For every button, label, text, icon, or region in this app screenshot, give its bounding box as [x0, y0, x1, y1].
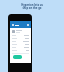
- button[interactable]: [12, 30, 29, 33]
- button[interactable]: [12, 47, 29, 48]
- button[interactable]: [12, 35, 29, 36]
- button[interactable]: Confirm: [13, 55, 22, 59]
- button[interactable]: [12, 50, 29, 51]
- button[interactable]: [12, 41, 29, 42]
- staticText: Hyperion lets us ship on the go: [21, 3, 43, 10]
- button[interactable]: [12, 38, 29, 39]
- button[interactable]: [12, 44, 29, 45]
